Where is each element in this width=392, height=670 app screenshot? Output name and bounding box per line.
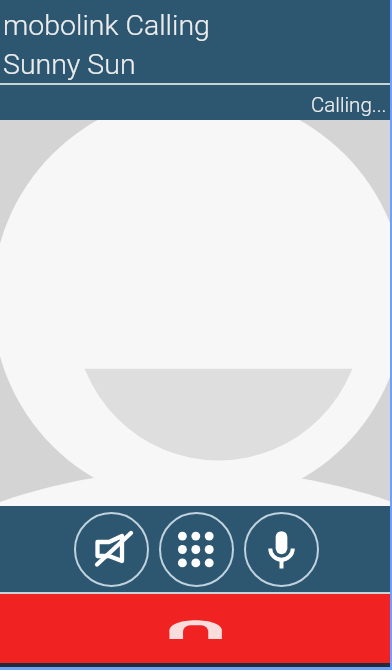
staticText: Calling... xyxy=(311,93,387,117)
staticText: mobolink Calling xyxy=(3,9,210,42)
staticText: Sunny Sun xyxy=(3,48,136,81)
button[interactable]: Speaker xyxy=(74,512,149,587)
button[interactable]: Mute microphone xyxy=(244,512,319,587)
button[interactable]: End call xyxy=(0,594,392,663)
button[interactable]: Keypad xyxy=(159,512,234,587)
